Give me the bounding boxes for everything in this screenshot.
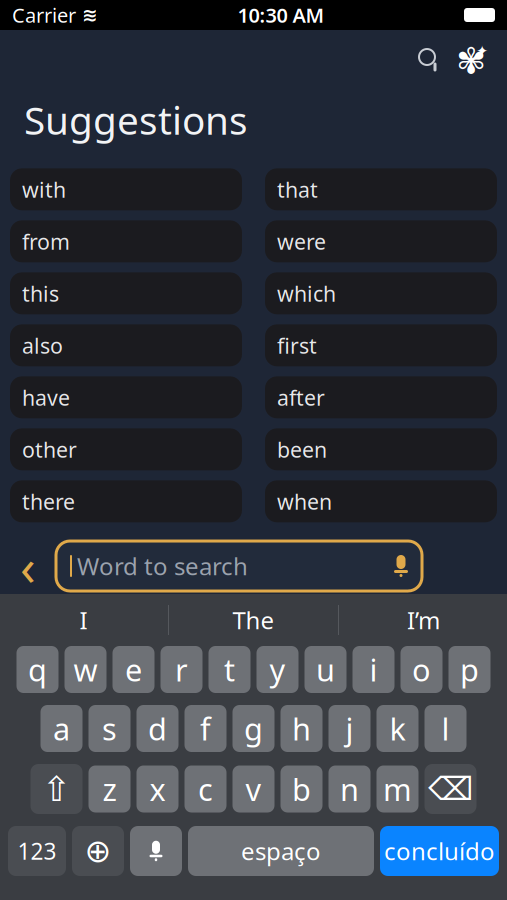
staticText: c xyxy=(198,769,213,809)
button[interactable]: this xyxy=(10,272,242,314)
button[interactable]: f xyxy=(184,705,226,752)
staticText: k xyxy=(389,708,405,749)
button[interactable]: first xyxy=(265,324,497,366)
staticText: also xyxy=(22,331,63,359)
button[interactable]: j xyxy=(328,705,370,752)
button[interactable] xyxy=(130,826,182,876)
staticText: this xyxy=(22,279,59,307)
button[interactable]: concluído xyxy=(380,826,499,876)
button[interactable]: y xyxy=(256,646,298,693)
button[interactable]: l xyxy=(424,705,466,752)
staticText: I’m xyxy=(407,604,440,636)
button[interactable]: a xyxy=(40,705,82,752)
button[interactable]: b xyxy=(280,765,322,812)
button[interactable]: s xyxy=(88,705,130,752)
staticText: i xyxy=(369,649,377,690)
button[interactable]: d xyxy=(136,705,178,752)
staticText: a xyxy=(53,708,70,749)
button[interactable]: w xyxy=(64,646,106,693)
button[interactable]: x xyxy=(136,765,178,812)
staticText: r xyxy=(175,649,188,690)
staticText: there xyxy=(22,487,75,515)
button[interactable]: r xyxy=(160,646,202,693)
button[interactable]: Search xyxy=(409,40,449,80)
staticText: n xyxy=(340,769,359,809)
staticText: been xyxy=(277,435,327,463)
button[interactable]: there xyxy=(10,480,242,522)
staticText: o xyxy=(412,649,431,690)
button[interactable]: I’m xyxy=(339,594,507,646)
staticText: other xyxy=(22,435,77,463)
button[interactable]: h xyxy=(280,705,322,752)
staticText: h xyxy=(292,708,311,749)
button[interactable]: when xyxy=(265,480,497,522)
staticText: ⇧ xyxy=(42,769,71,809)
staticText: espaço xyxy=(241,835,321,867)
staticText: w xyxy=(73,649,97,690)
button[interactable]: q xyxy=(16,646,58,693)
button[interactable]: which xyxy=(265,272,497,314)
button[interactable]: z xyxy=(88,765,130,812)
staticText: concluído xyxy=(384,835,495,867)
button[interactable]: from xyxy=(10,220,242,262)
button[interactable]: ⌫ xyxy=(424,764,476,814)
staticText: with xyxy=(22,175,66,203)
staticText: p xyxy=(460,649,479,690)
button[interactable]: were xyxy=(265,220,497,262)
button[interactable]: g xyxy=(232,705,274,752)
button[interactable]: o xyxy=(400,646,442,693)
staticText: b xyxy=(292,769,311,809)
button[interactable]: ⊕ xyxy=(72,826,124,876)
button[interactable]: also xyxy=(10,324,242,366)
staticText: y xyxy=(269,649,285,690)
staticText: z xyxy=(102,769,116,809)
button[interactable]: t xyxy=(208,646,250,693)
staticText: d xyxy=(148,708,167,749)
staticText: s xyxy=(102,708,117,749)
button[interactable]: after xyxy=(265,376,497,418)
button[interactable]: e xyxy=(112,646,154,693)
staticText: when xyxy=(277,487,332,515)
staticText: that xyxy=(277,175,318,203)
staticText: from xyxy=(22,227,70,255)
button[interactable]: with xyxy=(10,168,242,210)
button[interactable]: u xyxy=(304,646,346,693)
staticText: 10:30 AM xyxy=(237,2,324,28)
staticText: l xyxy=(441,708,449,749)
staticText: 123 xyxy=(17,836,56,866)
staticText: ≋ xyxy=(82,4,98,26)
button[interactable]: 123 xyxy=(8,826,66,876)
button[interactable]: k xyxy=(376,705,418,752)
button[interactable]: I xyxy=(0,594,168,646)
staticText: ⊕ xyxy=(84,833,111,869)
staticText: The xyxy=(232,604,274,636)
staticText: after xyxy=(277,383,325,411)
staticText: Word to search xyxy=(77,550,248,582)
button[interactable]: ⇧ xyxy=(30,764,82,814)
staticText: ✦ xyxy=(476,43,488,59)
button[interactable]: Back xyxy=(0,538,56,594)
button[interactable]: p xyxy=(448,646,490,693)
staticText: x xyxy=(149,769,165,809)
staticText: ✾ xyxy=(456,41,486,81)
button[interactable]: Voice search xyxy=(384,544,418,588)
button[interactable]: n xyxy=(328,765,370,812)
button[interactable]: v xyxy=(232,765,274,812)
button[interactable]: The xyxy=(169,594,338,646)
staticText: j xyxy=(345,708,353,749)
button[interactable]: espaço xyxy=(188,826,374,876)
staticText: g xyxy=(244,708,263,749)
button[interactable]: i xyxy=(352,646,394,693)
button[interactable]: have xyxy=(10,376,242,418)
button[interactable]: that xyxy=(265,168,497,210)
staticText: first xyxy=(277,331,317,359)
staticText: f xyxy=(200,708,211,749)
button[interactable]: Settings xyxy=(453,40,493,80)
staticText: Carrier xyxy=(12,2,76,28)
button[interactable]: other xyxy=(10,428,242,470)
button[interactable]: been xyxy=(265,428,497,470)
button[interactable]: c xyxy=(184,765,226,812)
button[interactable]: m xyxy=(376,765,418,812)
staticText: q xyxy=(28,649,47,690)
staticText: t xyxy=(224,649,235,690)
